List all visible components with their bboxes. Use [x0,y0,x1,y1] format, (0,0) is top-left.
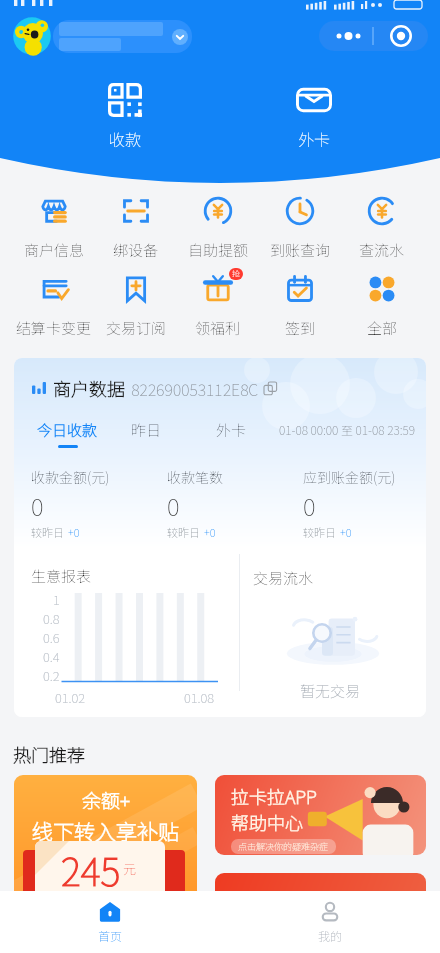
staticText: 01.02 [55,688,86,707]
staticText: 抢 [232,268,240,280]
staticText: 今日收款 [37,419,98,441]
staticText: 较昨日 [167,524,200,540]
button[interactable]: 签到 [259,273,341,339]
staticText: +0 [204,524,216,540]
staticText: 0 [167,488,180,523]
staticText: 较昨日 [303,524,336,540]
staticText: 交易流水 [253,567,314,589]
button[interactable]: 昨日 [131,419,162,441]
button[interactable] [53,20,192,53]
staticText: 热门推荐 [13,741,85,767]
staticText: 帮助中心 [231,809,303,835]
staticText: 0.2 [43,666,60,685]
button[interactable]: 交易订阅 [95,273,177,339]
button[interactable]: 拉卡拉APP [215,775,426,855]
staticText: 拉卡拉APP [231,783,317,809]
staticText: 较昨日 [31,524,64,540]
staticText: 0 [31,488,44,523]
button[interactable]: 结算卡变更 [13,273,95,339]
staticText: 元 [123,859,137,878]
staticText: 余额+ [82,786,130,814]
staticText: 商户数据 [53,375,125,401]
staticText: +0 [340,524,352,540]
staticText: 01-08 00:00 至 01-08 23:59 [279,421,415,438]
staticText: 领福利 [195,317,241,339]
staticText: 0.8 [43,609,60,628]
staticText: 点击解决你的疑难杂症 [238,840,329,853]
staticText: 到账查询 [270,239,331,261]
button[interactable]: Copy merchant number [264,382,277,395]
staticText: 收款笔数 [167,467,223,487]
button[interactable]: 绑设备 [95,195,177,261]
staticText: 822690053112E8C [131,377,259,400]
button[interactable]: 抢 [177,273,259,339]
staticText: 暂无交易 [300,680,361,702]
staticText: 收款 [109,127,142,150]
staticText: 查流水 [359,239,405,261]
staticText: +0 [68,524,80,540]
staticText: 245 [61,842,121,897]
staticText: 自助提额 [188,239,249,261]
staticText: 结算卡变更 [16,317,92,339]
staticText: 外卡 [298,127,331,150]
staticText: 商户信息 [24,239,85,261]
staticText: 交易订阅 [106,317,167,339]
button[interactable]: 今日收款 [37,419,98,448]
button[interactable]: 收款 [108,83,142,150]
staticText: 0 [303,488,316,523]
staticText: 我的 [318,927,343,944]
staticText: 01.08 [184,688,215,707]
staticText: 签到 [285,317,316,339]
button[interactable]: 商户信息 [13,195,95,261]
staticText: 生意报表 [31,565,92,587]
button[interactable]: 全部 [341,273,423,339]
button[interactable]: More options [319,21,428,51]
button[interactable]: 外卡 [296,83,332,150]
button[interactable]: 查流水 [341,195,423,261]
button[interactable]: 我的 [220,891,440,953]
button[interactable]: 到账查询 [259,195,341,261]
button[interactable]: 自助提额 [177,195,259,261]
staticText: 1 [53,590,60,609]
button[interactable] [215,873,426,953]
staticText: 0.6 [43,628,60,647]
staticText: 收款金额(元) [31,467,110,487]
button[interactable]: 余额+ [14,775,197,953]
button[interactable]: 首页 [0,891,220,953]
staticText: 全部 [367,317,398,339]
staticText: 首页 [98,927,123,944]
button[interactable]: 外卡 [216,419,247,441]
staticText: 0.4 [43,647,60,666]
staticText: 应到账金额(元) [303,467,396,487]
staticText: 线下转入享补贴 [32,816,179,846]
staticText: 绑设备 [113,239,159,261]
